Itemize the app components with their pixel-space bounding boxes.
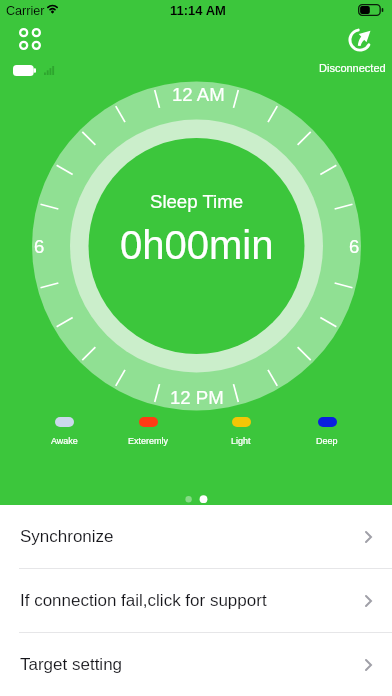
staticText: Carrier bbox=[6, 4, 45, 18]
staticText: 6 bbox=[349, 236, 360, 257]
staticText: Disconnected bbox=[319, 62, 386, 74]
staticText: Target setting bbox=[20, 655, 123, 674]
button[interactable]: Target setting bbox=[0, 633, 392, 696]
staticText: If connection fail,click for support bbox=[20, 591, 267, 610]
staticText: 12 PM bbox=[170, 387, 224, 408]
staticText: Synchronize bbox=[20, 527, 114, 546]
button[interactable]: If connection fail,click for support bbox=[0, 569, 392, 632]
staticText: 11:14 AM bbox=[170, 3, 226, 18]
other: Reconnect bbox=[348, 28, 372, 52]
button[interactable]: Menu bbox=[14, 24, 46, 56]
staticText: Exteremly bbox=[128, 436, 169, 446]
staticText: Light bbox=[231, 436, 251, 446]
staticText: Deep bbox=[316, 436, 338, 446]
staticText: 0h00min bbox=[120, 223, 274, 268]
staticText: 12 AM bbox=[172, 84, 225, 105]
staticText: 6 bbox=[34, 236, 45, 257]
staticText: Awake bbox=[51, 436, 78, 446]
staticText: Sleep Time bbox=[150, 191, 244, 212]
button[interactable]: Synchronize bbox=[0, 505, 392, 568]
button[interactable]: Reconnect bbox=[300, 24, 392, 76]
